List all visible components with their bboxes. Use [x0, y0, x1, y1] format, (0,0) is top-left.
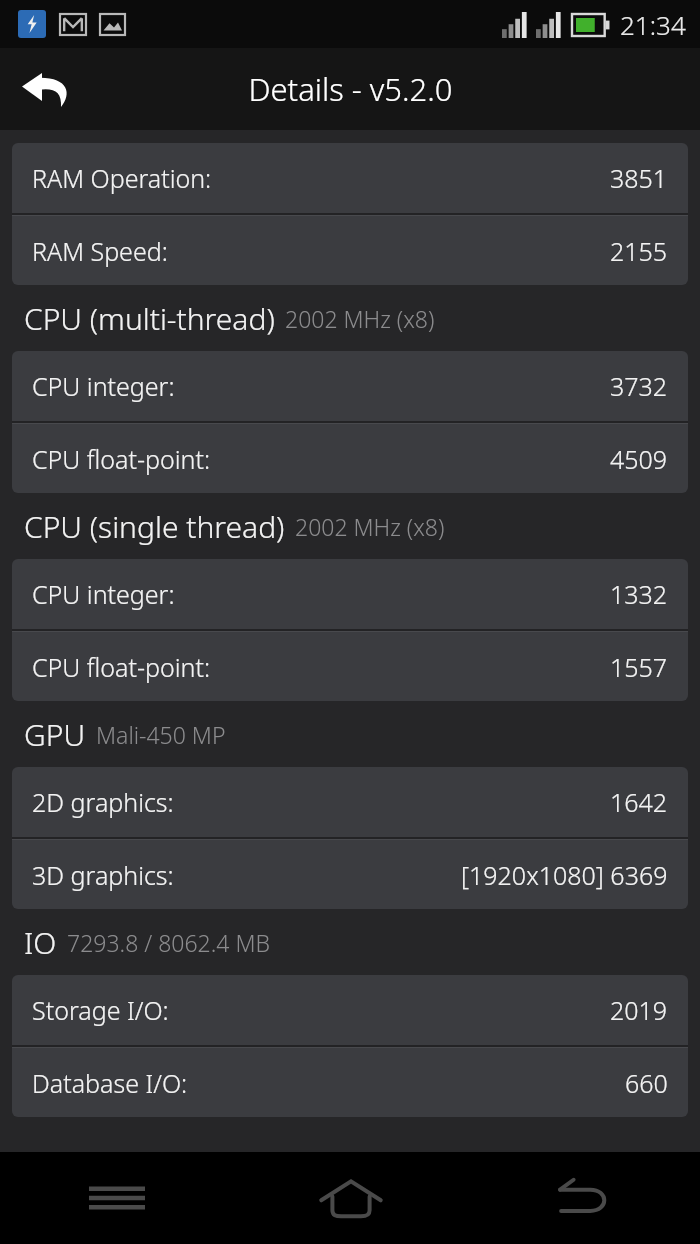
staticText: CPU (multi-thread) [24, 298, 275, 339]
staticText: 21:34 [620, 7, 686, 42]
button[interactable]: Database I/O: [12, 1048, 688, 1117]
button[interactable]: Back [467, 1152, 700, 1244]
staticText: Details - v5.2.0 [248, 68, 453, 110]
staticText: GPU [24, 714, 86, 755]
button[interactable]: CPU float-point: [12, 632, 688, 701]
staticText: 3D graphics: [32, 858, 174, 892]
staticText: CPU integer: [32, 369, 175, 403]
button[interactable]: RAM Operation: [12, 143, 688, 213]
button[interactable]: Menu [0, 1152, 234, 1244]
staticText: RAM Speed: [32, 234, 168, 268]
staticText: 2155 [610, 234, 668, 268]
button[interactable]: 3D graphics: [12, 840, 688, 909]
staticText: Mali-450 MP [96, 719, 226, 750]
staticText: 660 [625, 1066, 668, 1100]
staticText: 1557 [610, 650, 668, 684]
button[interactable]: CPU integer: [12, 559, 688, 629]
staticText: 3732 [610, 369, 668, 403]
staticText: 1332 [610, 577, 668, 611]
staticText: 2002 MHz (x8) [295, 511, 445, 542]
staticText: 2019 [610, 993, 668, 1027]
staticText: 3851 [610, 161, 668, 195]
button[interactable]: Storage I/O: [12, 975, 688, 1045]
staticText: 7293.8 / 8062.4 MB [67, 927, 271, 958]
staticText: 2D graphics: [32, 785, 174, 819]
staticText: CPU integer: [32, 577, 175, 611]
staticText: Database I/O: [32, 1066, 188, 1100]
button[interactable]: 2D graphics: [12, 767, 688, 837]
staticText: 2002 MHz (x8) [285, 303, 435, 334]
staticText: 4509 [610, 442, 668, 476]
staticText: 1642 [610, 785, 668, 819]
staticText: Storage I/O: [32, 993, 169, 1027]
staticText: IO [24, 922, 57, 963]
button[interactable]: Back [6, 49, 86, 129]
button[interactable]: Home [234, 1152, 467, 1244]
staticText: [1920x1080] 6369 [461, 858, 668, 892]
button[interactable]: CPU float-point: [12, 424, 688, 493]
staticText: RAM Operation: [32, 161, 212, 195]
staticText: CPU float-point: [32, 442, 211, 476]
button[interactable]: CPU integer: [12, 351, 688, 421]
button[interactable]: RAM Speed: [12, 216, 688, 285]
staticText: CPU (single thread) [24, 506, 285, 547]
staticText: CPU float-point: [32, 650, 211, 684]
